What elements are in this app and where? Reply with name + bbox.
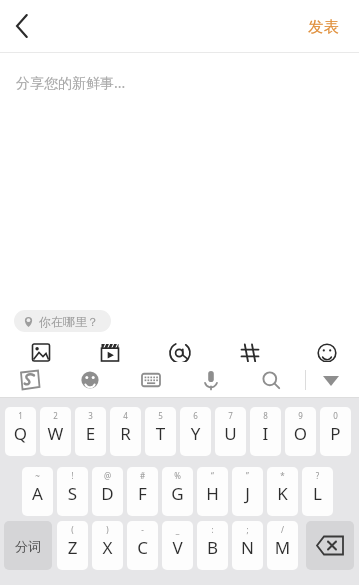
button[interactable]: “ <box>197 467 228 516</box>
staticText: * <box>267 470 298 481</box>
button[interactable]: # <box>127 467 158 516</box>
button[interactable]: 5 <box>145 407 176 456</box>
staticText: _ <box>162 524 193 535</box>
button[interactable]: Emoji <box>74 364 106 396</box>
button[interactable]: 8 <box>250 407 281 456</box>
staticText: % <box>162 470 193 481</box>
button[interactable]: 分词 <box>4 521 52 570</box>
button[interactable]: Back <box>6 10 38 42</box>
staticText: - <box>127 524 158 535</box>
staticText: ! <box>57 470 88 481</box>
button[interactable]: 0 <box>320 407 351 456</box>
staticText: P <box>320 422 351 445</box>
staticText: J <box>232 482 263 505</box>
staticText: : <box>197 524 228 535</box>
staticText: 2 <box>40 410 71 421</box>
staticText: T <box>145 422 176 445</box>
staticText: L <box>302 482 333 505</box>
staticText: F <box>127 482 158 505</box>
staticText: E <box>75 422 106 445</box>
button[interactable]: Voice input <box>195 364 227 396</box>
staticText: M <box>267 536 298 559</box>
staticText: 发表 <box>308 17 339 37</box>
staticText: 5 <box>145 410 176 421</box>
staticText: ) <box>92 524 123 535</box>
button[interactable]: 2 <box>40 407 71 456</box>
button[interactable]: ! <box>57 467 88 516</box>
staticText: Q <box>5 422 36 445</box>
staticText: @ <box>92 470 123 481</box>
button[interactable]: ” <box>232 467 263 516</box>
button[interactable]: 3 <box>75 407 106 456</box>
button[interactable]: Emoji <box>310 336 344 370</box>
button[interactable]: 1 <box>5 407 36 456</box>
staticText: ; <box>232 524 263 535</box>
staticText: O <box>285 422 316 445</box>
staticText: # <box>127 470 158 481</box>
staticText: ? <box>302 470 333 481</box>
staticText: S <box>57 482 88 505</box>
button[interactable]: 9 <box>285 407 316 456</box>
staticText: 1 <box>5 410 36 421</box>
button[interactable]: ) <box>92 521 123 570</box>
button[interactable]: - <box>127 521 158 570</box>
staticText: H <box>197 482 228 505</box>
staticText: D <box>92 482 123 505</box>
button[interactable]: 6 <box>180 407 211 456</box>
button[interactable]: / <box>267 521 298 570</box>
button[interactable]: ? <box>302 467 333 516</box>
button[interactable]: Hide keyboard <box>315 364 347 396</box>
button[interactable]: 发表 <box>296 9 351 45</box>
staticText: 0 <box>320 410 351 421</box>
button[interactable]: * <box>267 467 298 516</box>
button[interactable]: Search <box>255 364 287 396</box>
button[interactable]: Topic <box>233 336 267 370</box>
staticText: ( <box>57 524 88 535</box>
staticText: ~ <box>22 470 53 481</box>
staticText: 8 <box>250 410 281 421</box>
button[interactable]: ( <box>57 521 88 570</box>
button[interactable]: Keyboard <box>135 364 167 396</box>
staticText: A <box>22 482 53 505</box>
staticText: 4 <box>110 410 141 421</box>
staticText: Y <box>180 422 211 445</box>
staticText: Z <box>57 536 88 559</box>
staticText: N <box>232 536 263 559</box>
staticText: V <box>162 536 193 559</box>
staticText: B <box>197 536 228 559</box>
staticText: ” <box>232 470 263 481</box>
staticText: R <box>110 422 141 445</box>
staticText: I <box>250 422 281 445</box>
button[interactable]: @ <box>92 467 123 516</box>
staticText: U <box>215 422 246 445</box>
staticText: 你在哪里？ <box>39 314 99 329</box>
button[interactable]: 7 <box>215 407 246 456</box>
staticText: 分享您的新鲜事... <box>16 73 126 92</box>
button[interactable]: Backspace <box>306 521 354 570</box>
button[interactable]: ~ <box>22 467 53 516</box>
button[interactable]: % <box>162 467 193 516</box>
staticText: 6 <box>180 410 211 421</box>
button[interactable]: ; <box>232 521 263 570</box>
staticText: W <box>40 422 71 445</box>
button[interactable]: 你在哪里？ <box>14 310 111 332</box>
staticText: G <box>162 482 193 505</box>
staticText: 3 <box>75 410 106 421</box>
button[interactable]: Add image <box>24 336 58 370</box>
button[interactable]: _ <box>162 521 193 570</box>
button[interactable]: Mention <box>163 336 197 370</box>
button[interactable]: 4 <box>110 407 141 456</box>
staticText: 7 <box>215 410 246 421</box>
staticText: C <box>127 536 158 559</box>
button[interactable]: Input method <box>14 364 46 396</box>
staticText: K <box>267 482 298 505</box>
staticText: 分词 <box>15 538 41 554</box>
button[interactable]: Add video <box>93 336 127 370</box>
staticText: / <box>267 524 298 535</box>
staticText: 9 <box>285 410 316 421</box>
button[interactable]: : <box>197 521 228 570</box>
staticText: X <box>92 536 123 559</box>
staticText: “ <box>197 470 228 481</box>
